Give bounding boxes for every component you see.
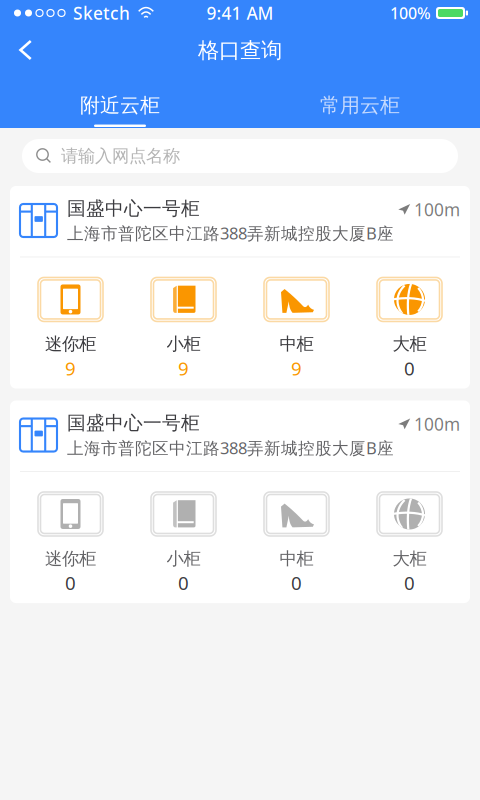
button[interactable]: Back: [0, 27, 48, 69]
staticText: 迷你柜: [45, 333, 96, 355]
button[interactable]: 迷你柜: [14, 492, 127, 595]
staticText: 上海市普陀区中江路388弄新城控股大厦B座: [67, 436, 394, 459]
staticText: 0: [404, 570, 415, 595]
button[interactable]: 小柜: [127, 492, 240, 595]
button[interactable]: 请输入网点名称: [22, 139, 458, 173]
staticText: 大柜: [392, 333, 426, 355]
staticText: 附近云柜: [80, 93, 160, 118]
staticText: 100%: [390, 2, 431, 24]
button[interactable]: 附近云柜: [0, 72, 240, 129]
staticText: 9: [178, 356, 189, 380]
staticText: 迷你柜: [45, 548, 96, 569]
staticText: 0: [178, 570, 189, 595]
staticText: 上海市普陀区中江路388弄新城控股大厦B座: [67, 222, 394, 244]
staticText: 小柜: [166, 548, 200, 569]
staticText: Sketch: [73, 1, 130, 24]
staticText: 常用云柜: [320, 93, 400, 118]
staticText: 9: [65, 356, 76, 380]
button[interactable]: 中柜: [240, 277, 353, 380]
button[interactable]: 迷你柜: [14, 277, 127, 380]
button[interactable]: 常用云柜: [240, 72, 480, 129]
staticText: 中柜: [279, 333, 313, 355]
staticText: 国盛中心一号柜: [67, 411, 200, 434]
staticText: 9:41 AM: [206, 1, 273, 24]
staticText: 格口查询: [198, 37, 282, 64]
staticText: 0: [65, 570, 76, 595]
staticText: 请输入网点名称: [61, 145, 180, 167]
button[interactable]: 大柜: [353, 492, 466, 595]
button[interactable]: 国盛中心一号柜: [10, 186, 470, 388]
staticText: 大柜: [392, 548, 426, 569]
staticText: 小柜: [166, 333, 200, 355]
staticText: 国盛中心一号柜: [67, 197, 200, 220]
button[interactable]: 中柜: [240, 492, 353, 595]
staticText: 0: [291, 570, 302, 595]
button[interactable]: 国盛中心一号柜: [10, 400, 470, 603]
staticText: 100m: [414, 412, 460, 435]
button[interactable]: 大柜: [353, 277, 466, 380]
button[interactable]: 小柜: [127, 277, 240, 380]
staticText: 100m: [414, 198, 460, 221]
staticText: 9: [291, 356, 302, 380]
staticText: 中柜: [279, 548, 313, 569]
staticText: 0: [404, 356, 415, 380]
